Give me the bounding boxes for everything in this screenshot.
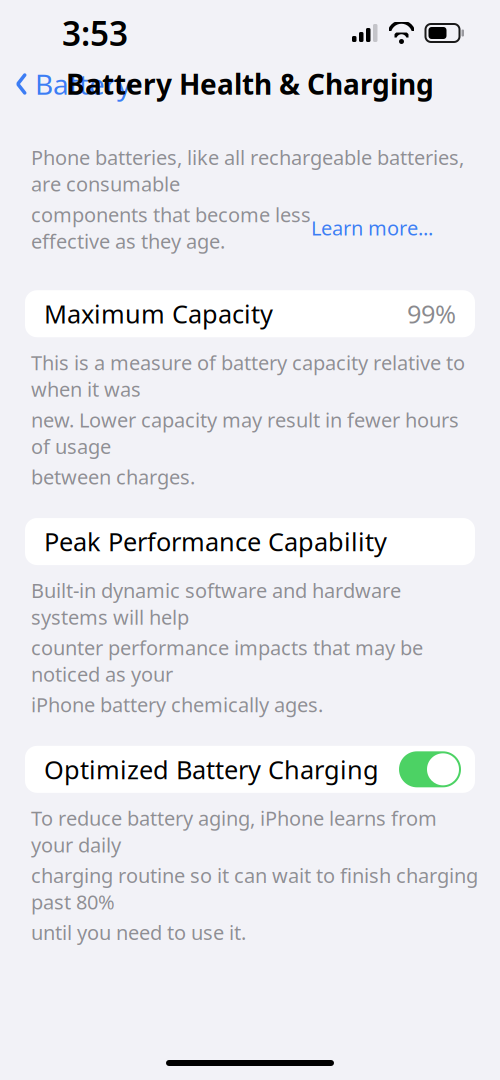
staticText: Peak Performance Capability (44, 525, 387, 558)
button[interactable]: Maximum Capacity (25, 290, 475, 337)
button[interactable]: Learn more... (311, 214, 433, 241)
button[interactable]: Peak Performance Capability (25, 518, 475, 565)
staticText: charging routine so it can wait to finis… (31, 862, 478, 915)
staticText: To reduce battery aging, iPhone learns f… (31, 805, 437, 858)
staticText: Battery Health & Charging (66, 65, 434, 103)
button[interactable]: Battery (0, 57, 131, 111)
staticText: new. Lower capacity may result in fewer … (31, 406, 459, 459)
staticText: until you need to use it. (31, 919, 246, 946)
staticText: Battery (35, 65, 131, 103)
staticText: Built-in dynamic software and hardware s… (31, 577, 401, 630)
staticText: Optimized Battery Charging (44, 752, 379, 786)
staticText: between charges. (31, 463, 195, 490)
staticText: iPhone battery chemically ages. (31, 691, 323, 718)
staticText: Phone batteries, like all rechargeable b… (31, 144, 464, 197)
staticText: Maximum Capacity (44, 297, 273, 330)
staticText: 99% (407, 297, 456, 330)
button[interactable]: Optimized Battery Charging (25, 746, 475, 793)
staticText: counter performance impacts that may be … (31, 634, 423, 687)
staticText: Learn more... (311, 214, 433, 241)
staticText: This is a measure of battery capacity re… (31, 349, 465, 402)
staticText: 3:53 (62, 11, 128, 55)
staticText: components that become less effective as… (31, 201, 311, 254)
